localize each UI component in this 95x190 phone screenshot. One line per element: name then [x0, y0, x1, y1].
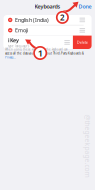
staticText: Done: [78, 3, 91, 10]
staticText: Privacy...: [5, 56, 16, 59]
button[interactable]: Delete: [73, 36, 92, 49]
staticText: English (India): [15, 16, 49, 23]
staticText: Keyboards: [34, 3, 60, 10]
staticText: iKey: [8, 37, 19, 44]
staticText: When using these keyboards, the keyboard…: [5, 48, 68, 51]
staticText: Emoji: [15, 27, 28, 34]
staticText: 2: [60, 12, 65, 23]
staticText: access all the data you type. About Thir…: [5, 52, 84, 55]
staticText: @thegeekpage.com: [56, 142, 95, 150]
staticText: Delete: [77, 40, 88, 45]
staticText: 1: [38, 47, 43, 59]
button[interactable]: English (India): [4, 15, 92, 25]
staticText: type languages: [8, 44, 29, 48]
button[interactable]: Emoji: [4, 25, 92, 35]
button[interactable]: Done: [77, 2, 93, 11]
